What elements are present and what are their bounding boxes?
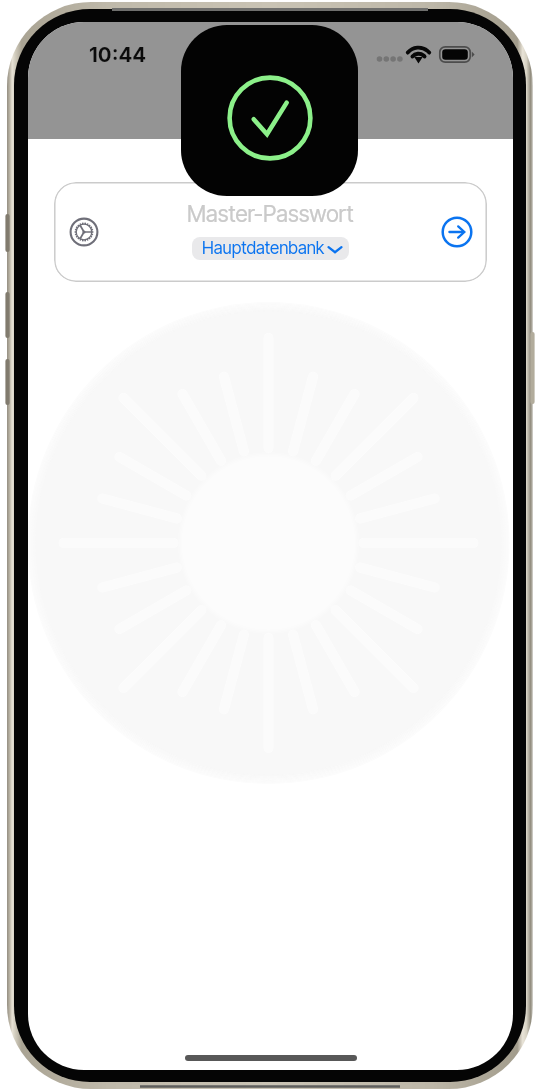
button[interactable]: Hauptdatenbank [192,237,349,260]
button[interactable]: Einstellungen [54,182,487,282]
staticText: 10:44 [89,42,147,67]
staticText: Hauptdatenbank [202,238,325,259]
button[interactable]: Entsperren [435,210,479,254]
button[interactable]: Einstellungen [62,210,106,254]
staticText: Master-Passwort [187,200,354,227]
